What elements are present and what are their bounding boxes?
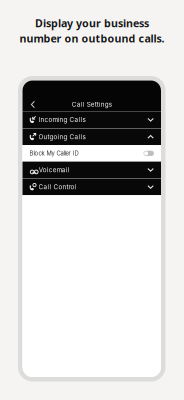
staticText: Voicemail [39,166,70,174]
staticText: Call Control [39,183,77,191]
button[interactable]: Call Control [22,179,161,195]
button[interactable]: Block My Caller ID [22,145,161,162]
staticText: number on outbound calls. [19,31,164,45]
button[interactable]: Outgoing Calls [22,129,161,145]
staticText: Outgoing Calls [39,133,86,141]
button[interactable]: Voicemail [22,162,161,178]
button[interactable]: Back [22,98,42,111]
staticText: Block My Caller ID [29,150,78,157]
button[interactable]: Incoming Calls [22,111,161,128]
staticText: Incoming Calls [39,116,86,124]
staticText: Display your business [35,16,149,30]
staticText: Call Settings [72,101,112,108]
